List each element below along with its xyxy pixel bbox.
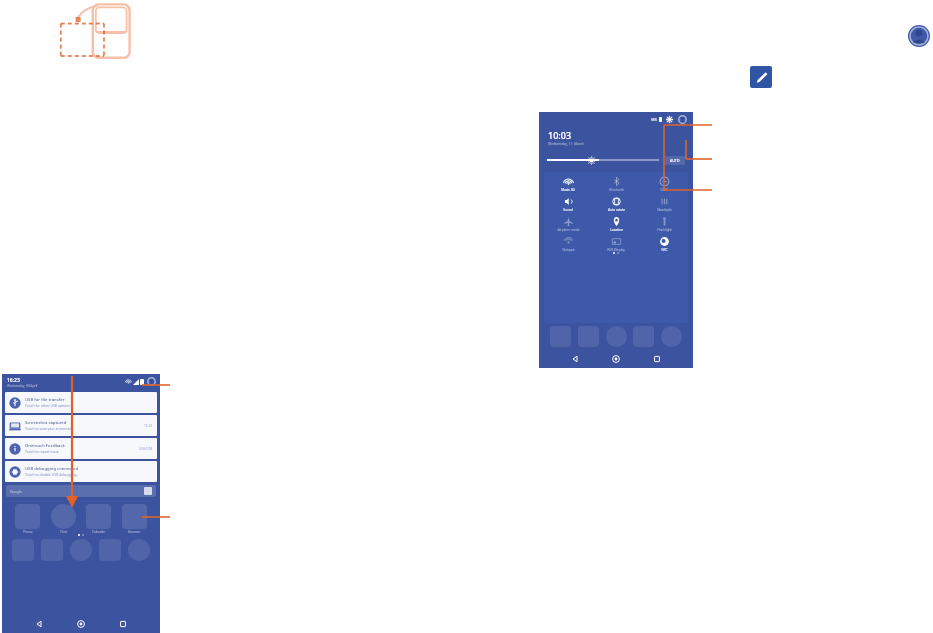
staticText: Chat [60, 530, 67, 534]
button[interactable]: Profile avatar [908, 25, 930, 47]
button[interactable]: Home [611, 354, 621, 364]
button[interactable]: Onetouch Feedback [9, 438, 153, 459]
button[interactable]: Chat [51, 504, 76, 534]
staticText: Browser [128, 530, 141, 534]
button[interactable]: Dock app 4 [128, 539, 150, 561]
staticText: NFC [661, 248, 668, 252]
staticText: Touch to report issue [25, 449, 59, 454]
button[interactable]: Recents [118, 619, 128, 629]
button[interactable]: Back [34, 619, 44, 629]
button[interactable]: Airplane mode [544, 216, 592, 232]
staticText: Onetouch Feedback [25, 443, 65, 449]
staticText: AUTO [670, 158, 680, 163]
button[interactable]: Back [570, 354, 580, 364]
button[interactable]: Auto rotate [592, 196, 640, 212]
button[interactable]: USB debugging connected [9, 461, 153, 482]
staticText: Flashlight [657, 228, 672, 232]
button[interactable]: Browser [122, 504, 147, 534]
staticText: Airplane mode [557, 228, 580, 232]
staticText: Wednesday, 30 April [7, 384, 38, 388]
staticText: DND [660, 188, 668, 192]
staticText: Wednesday, 11 March [548, 141, 585, 146]
staticText: Auto rotate [608, 208, 625, 212]
staticText: Location [610, 228, 623, 232]
staticText: Bluetooth [609, 188, 624, 192]
staticText: WiFi Display [607, 248, 625, 252]
button[interactable]: Profile [147, 377, 156, 386]
staticText: USB for file transfer [25, 397, 65, 403]
staticText: Nearbyde [657, 208, 672, 212]
staticText: 96% [651, 118, 657, 122]
button[interactable]: Maxis 5G [544, 176, 592, 192]
button[interactable]: Settings [666, 116, 673, 123]
staticText: 10:03 [548, 129, 572, 141]
button[interactable]: Sound [544, 196, 592, 212]
button[interactable]: App 4 [661, 326, 682, 347]
staticText: Screenshot captured [25, 420, 67, 426]
button[interactable]: Dock app 2 [70, 539, 92, 561]
staticText: USB debugging connected [25, 466, 79, 472]
button[interactable]: Calendar [86, 504, 111, 534]
staticText: Touch to view your screenshot [25, 426, 74, 431]
staticText: USB/OTA [139, 447, 153, 451]
button[interactable]: WiFi Display [592, 236, 640, 252]
button[interactable]: Bluetooth [592, 176, 640, 192]
button[interactable]: Recents [652, 354, 662, 364]
button[interactable]: App 2 [606, 326, 627, 347]
button[interactable]: Screenshot captured [9, 415, 153, 436]
staticText: Hotspot [562, 248, 575, 252]
button[interactable]: DND [640, 176, 688, 192]
button[interactable]: Profile [678, 115, 687, 124]
staticText: Touch to disable USB debugging [25, 472, 77, 477]
button[interactable]: Phone [15, 504, 40, 534]
button[interactable]: Edit [750, 66, 772, 88]
button[interactable]: Auto brightness [665, 156, 685, 165]
staticText: 16:23 [144, 424, 153, 428]
button[interactable]: Hotspot [544, 236, 592, 252]
staticText: Sound [563, 208, 573, 212]
button[interactable]: Search [10, 485, 152, 497]
button[interactable]: Home [76, 619, 86, 629]
staticText: Maxis 5G [561, 188, 575, 192]
button[interactable]: Flashlight [640, 216, 688, 232]
staticText: Touch for other USB options [25, 403, 70, 408]
button[interactable]: USB for file transfer [9, 392, 153, 413]
staticText: Calendar [92, 530, 106, 534]
button[interactable]: Nearbyde [640, 196, 688, 212]
staticText: 16:23 [7, 377, 20, 384]
button[interactable]: NFC [640, 236, 688, 252]
staticText: Google [10, 489, 22, 494]
button[interactable]: Location [592, 216, 640, 232]
staticText: Phone [23, 530, 33, 534]
